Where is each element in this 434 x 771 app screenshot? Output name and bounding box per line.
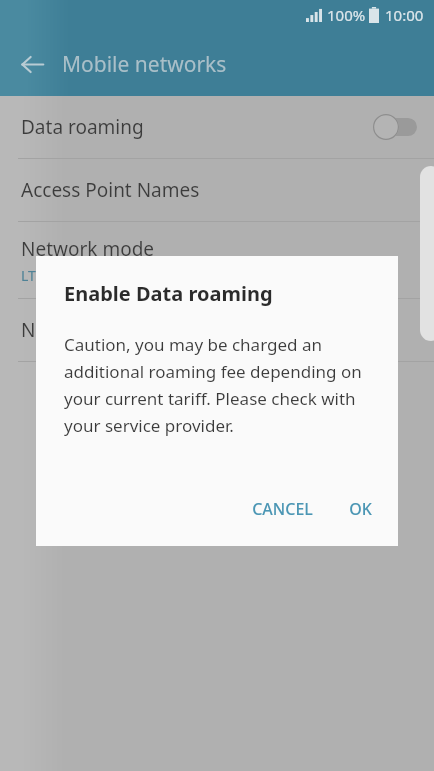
staticText: 100%: [327, 5, 366, 25]
staticText: Enable Data roaming: [64, 280, 273, 307]
button[interactable]: Network mode: [0, 222, 434, 298]
staticText: 10:00: [385, 5, 424, 25]
staticText: CANCEL: [252, 498, 313, 520]
staticText: OK: [349, 498, 372, 520]
button[interactable]: Data roaming: [0, 96, 434, 158]
staticText: Mobile networks: [62, 50, 227, 79]
staticText: Access Point Names: [21, 177, 200, 203]
staticText: Caution, you may be charged an additiona…: [64, 333, 378, 437]
button[interactable]: OK: [337, 488, 384, 530]
button[interactable]: Back: [10, 42, 54, 86]
button[interactable]: Network operators: [0, 299, 434, 361]
staticText: Data roaming: [21, 114, 144, 140]
staticText: Network mode: [21, 236, 155, 262]
staticText: Network operators: [21, 317, 190, 343]
button[interactable]: CANCEL: [240, 488, 325, 530]
button[interactable]: Access Point Names: [0, 159, 434, 221]
staticText: LTE/WCDMA/GSM (auto connect): [21, 266, 237, 285]
